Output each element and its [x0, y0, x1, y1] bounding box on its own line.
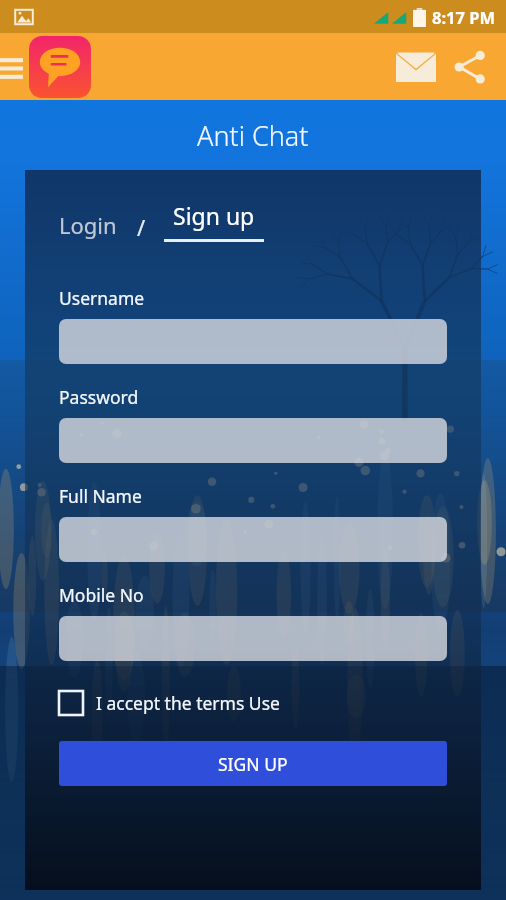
staticText: 8:17 PM — [432, 6, 496, 28]
button[interactable]: Share — [446, 43, 494, 91]
staticText: / — [137, 212, 146, 242]
button[interactable] — [59, 418, 447, 463]
staticText: Mobile No — [59, 583, 144, 607]
staticText: Sign up — [173, 200, 255, 231]
button[interactable]: Login — [59, 208, 117, 242]
button[interactable]: SIGN UP — [59, 741, 447, 786]
staticText: SIGN UP — [218, 752, 288, 776]
button[interactable]: Open navigation menu — [0, 50, 27, 84]
button[interactable]: Anti Chat logo — [29, 36, 91, 98]
staticText: I accept the terms Use — [96, 691, 280, 715]
button[interactable]: Email — [392, 43, 440, 91]
staticText: Login — [59, 210, 117, 240]
button[interactable] — [59, 319, 447, 364]
staticText: Anti Chat — [197, 117, 309, 154]
button[interactable] — [59, 616, 447, 661]
button[interactable] — [59, 517, 447, 562]
staticText: Username — [59, 286, 145, 310]
button[interactable]: I accept the terms Use — [59, 687, 280, 719]
staticText: Password — [59, 385, 139, 409]
button[interactable]: Sign up — [164, 200, 264, 242]
staticText: Full Name — [59, 484, 142, 508]
